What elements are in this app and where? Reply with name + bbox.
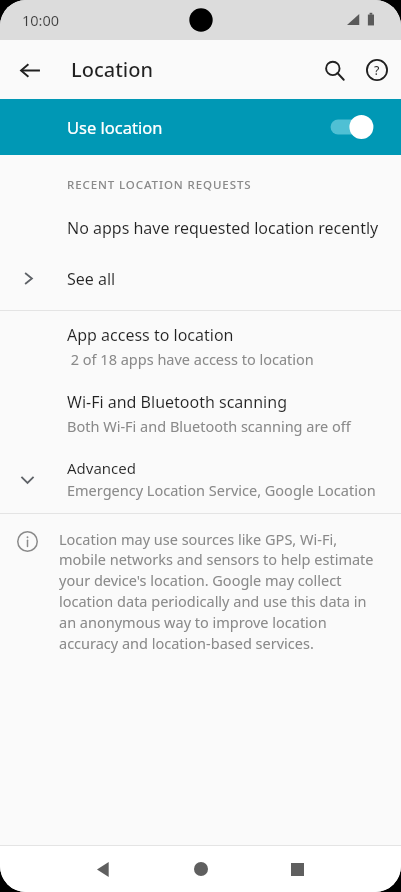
staticText: No apps have requested location recently: [67, 217, 379, 239]
staticText: Location: [71, 56, 153, 83]
staticText: Wi-Fi and Bluetooth scanning: [67, 391, 287, 413]
staticText: Emergency Location Service, Google Locat…: [67, 480, 389, 500]
button[interactable]: Use location: [0, 99, 401, 155]
staticText: Use location: [67, 116, 329, 138]
button[interactable]: Home: [181, 849, 221, 889]
button[interactable]: Back: [9, 49, 51, 91]
staticText: RECENT LOCATION REQUESTS: [67, 177, 252, 193]
staticText: Advanced: [67, 458, 137, 478]
button[interactable]: Back: [84, 849, 124, 889]
staticText: See all: [67, 268, 116, 290]
button[interactable]: App access to location: [0, 324, 401, 369]
staticText: App access to location: [67, 324, 234, 346]
button[interactable]: Recents: [277, 849, 317, 889]
staticText: 10:00: [22, 10, 60, 30]
button[interactable]: Help: [356, 49, 398, 91]
button[interactable]: Advanced: [0, 458, 401, 500]
button[interactable]: Search: [313, 49, 355, 91]
staticText: 2 of 18 apps have access to location: [67, 349, 314, 369]
button[interactable]: Wi-Fi and Bluetooth scanning: [0, 391, 401, 436]
button[interactable]: No apps have requested location recently: [0, 210, 401, 246]
staticText: ?: [374, 62, 380, 78]
staticText: Location may use sources like GPS, Wi-Fi…: [59, 529, 385, 654]
staticText: Both Wi-Fi and Bluetooth scanning are of…: [67, 416, 351, 436]
button[interactable]: See all: [0, 261, 401, 296]
